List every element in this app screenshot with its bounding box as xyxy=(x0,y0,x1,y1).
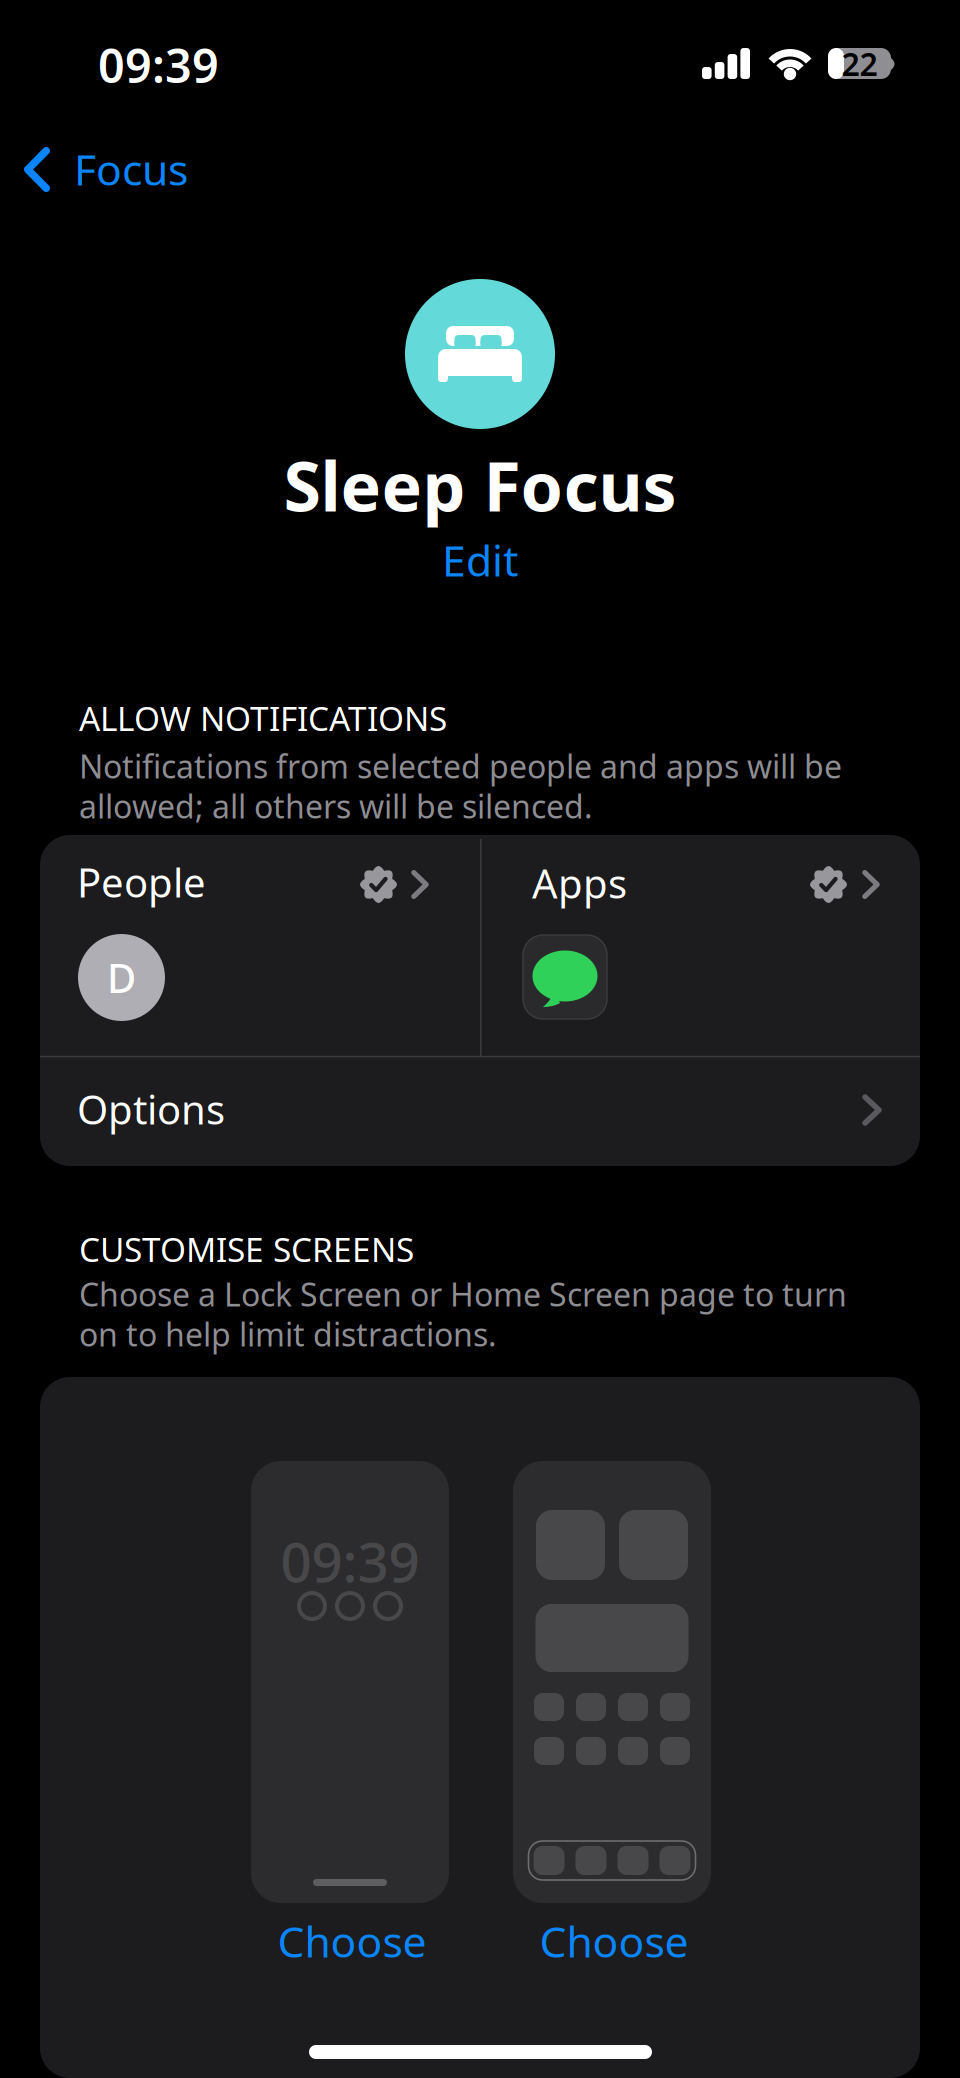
button[interactable]: Focus xyxy=(15,130,245,210)
staticText: 09:39 xyxy=(280,1525,419,1597)
button[interactable]: Apps xyxy=(481,835,920,1053)
staticText: D xyxy=(107,951,136,1004)
staticText: Apps xyxy=(532,856,627,909)
staticText: Choose a Lock Screen or Home Screen page… xyxy=(79,1273,847,1315)
button[interactable]: Choose xyxy=(519,1910,709,1972)
button[interactable]: Edit xyxy=(420,530,540,590)
staticText: ALLOW NOTIFICATIONS xyxy=(79,696,447,740)
staticText: Sleep Focus xyxy=(283,440,676,530)
staticText: 09:39 xyxy=(98,34,219,96)
staticText: 22 xyxy=(841,42,877,85)
staticText: allowed; all others will be silenced. xyxy=(79,785,593,827)
staticText: Edit xyxy=(442,532,518,588)
button[interactable]: Options xyxy=(40,1057,920,1166)
staticText: CUSTOMISE SCREENS xyxy=(79,1227,414,1271)
staticText: on to help limit distractions. xyxy=(79,1313,497,1355)
staticText: Focus xyxy=(74,141,188,197)
staticText: Choose xyxy=(277,1913,426,1969)
staticText: Options xyxy=(77,1082,225,1135)
staticText: People xyxy=(77,855,206,908)
button[interactable]: People xyxy=(40,835,481,1053)
staticText: Choose xyxy=(539,1913,688,1969)
staticText: Notifications from selected people and a… xyxy=(79,745,842,787)
button[interactable]: Choose xyxy=(257,1910,447,1972)
